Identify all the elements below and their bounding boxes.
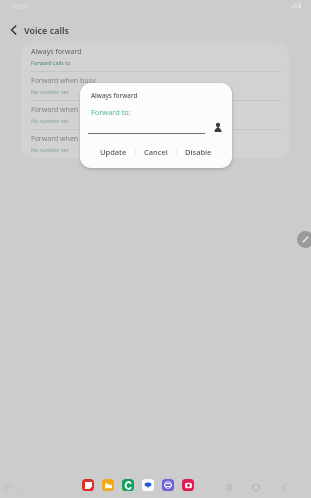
staticText: Forward calls to	[31, 59, 71, 66]
staticText: Always forward	[31, 47, 82, 57]
staticText: 10:00	[11, 2, 28, 11]
button[interactable]: Choose contact	[211, 120, 225, 134]
button[interactable]: Phone	[122, 479, 134, 491]
staticText: No number set	[31, 117, 69, 124]
staticText: Cancel	[144, 147, 168, 157]
button[interactable]: My Files	[102, 479, 114, 491]
staticText: Always forward	[91, 91, 138, 100]
staticText: No number set	[31, 88, 69, 95]
button[interactable]: Back	[278, 481, 290, 493]
button[interactable]: Cancel	[136, 144, 176, 160]
button[interactable]: Always forward	[21, 43, 289, 71]
button[interactable]: Forward when busy	[21, 72, 289, 100]
staticText: Forward when unanswered	[31, 105, 121, 115]
button[interactable]: Notes	[82, 479, 94, 491]
staticText: Forward to:	[91, 107, 131, 117]
button[interactable]: Forward when unreachable	[21, 130, 289, 158]
button[interactable]: Recent apps	[223, 481, 235, 493]
staticText: Voice calls	[24, 24, 70, 36]
button[interactable]: Internet	[162, 479, 174, 491]
staticText: No number set	[31, 146, 69, 153]
button[interactable]: Disable	[177, 144, 220, 160]
staticText: Disable	[185, 147, 212, 157]
staticText: Update	[100, 147, 127, 157]
button[interactable]: Update	[92, 144, 135, 160]
button[interactable]: Forward when unanswered	[21, 101, 289, 129]
button[interactable]: Edit	[297, 231, 311, 248]
staticText: Forward when unreachable	[31, 134, 121, 144]
button[interactable]: Camera	[182, 479, 194, 491]
button[interactable]: Recents panel	[1, 482, 13, 494]
button[interactable]: Home	[250, 481, 262, 493]
staticText: Forward when busy	[31, 76, 96, 86]
button[interactable]: Messages	[142, 479, 154, 491]
button[interactable]: Navigate up	[4, 21, 22, 39]
